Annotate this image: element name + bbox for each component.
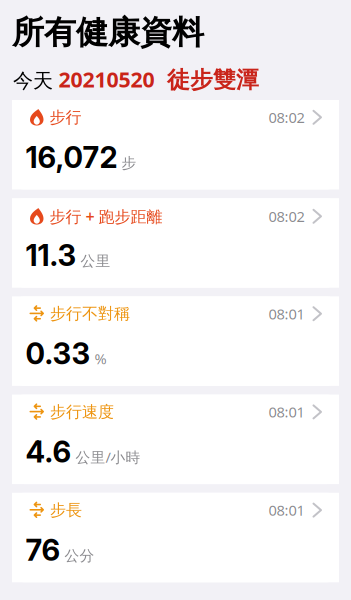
staticText: 公里/小時 bbox=[75, 447, 140, 467]
staticText: 徒步雙潭 bbox=[167, 66, 259, 94]
staticText: 08:01 bbox=[268, 304, 304, 323]
staticText: 0.33 bbox=[25, 336, 90, 371]
staticText: 步行不對稱 bbox=[50, 304, 130, 324]
staticText: 4.6 bbox=[25, 434, 71, 470]
staticText: 76 bbox=[25, 532, 60, 568]
staticText: 步長 bbox=[50, 500, 82, 520]
staticText: % bbox=[94, 349, 106, 368]
staticText: 11.3 bbox=[25, 238, 76, 273]
staticText: 步行 + 跑步距離 bbox=[49, 206, 162, 227]
button[interactable]: 步行不對稱 bbox=[12, 296, 339, 386]
button[interactable]: 步長 bbox=[12, 493, 339, 582]
staticText: 所有健康資料 bbox=[12, 13, 204, 52]
staticText: 08:01 bbox=[268, 402, 304, 422]
button[interactable]: 步行速度 bbox=[12, 395, 339, 484]
staticText: 08:02 bbox=[268, 108, 304, 127]
staticText: 08:01 bbox=[268, 500, 304, 520]
staticText: 20210520 bbox=[58, 65, 154, 94]
staticText: 公分 bbox=[64, 547, 94, 565]
staticText: 08:02 bbox=[268, 207, 304, 226]
button[interactable]: 步行 + 跑步距離 bbox=[12, 198, 339, 288]
staticText: 今天 bbox=[13, 69, 53, 93]
staticText: 16,072 bbox=[25, 139, 117, 175]
staticText: 公里 bbox=[80, 252, 110, 270]
staticText: 步行速度 bbox=[50, 402, 114, 422]
staticText: 步 bbox=[121, 154, 136, 172]
staticText: 步行 bbox=[49, 107, 81, 127]
button[interactable]: 步行 bbox=[12, 100, 339, 189]
